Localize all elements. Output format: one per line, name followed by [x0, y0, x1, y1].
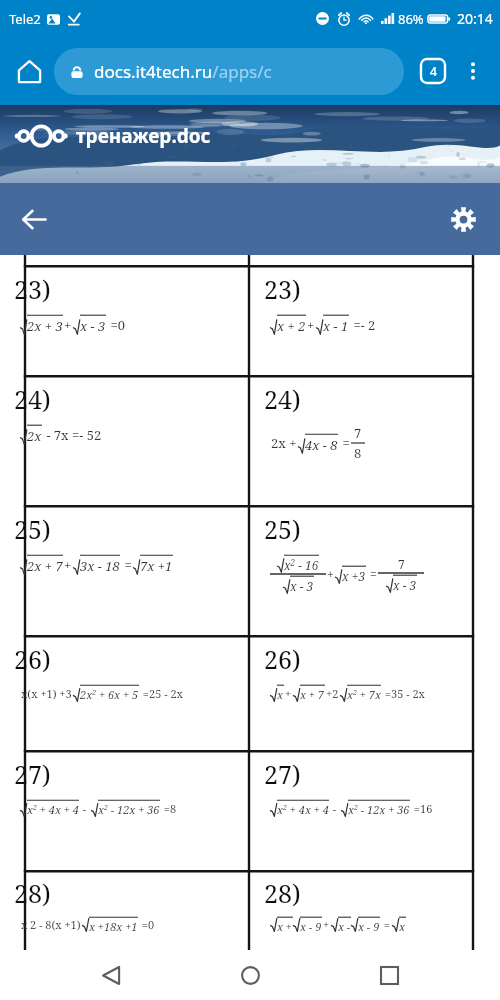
staticText: x -	[338, 919, 351, 932]
button[interactable]: Home	[222, 950, 278, 1000]
staticText: 3x - 18	[80, 557, 120, 575]
staticText: x	[21, 917, 28, 932]
staticText: 2x	[27, 427, 42, 445]
button[interactable]: More options	[454, 52, 492, 90]
staticText: x - 3	[290, 578, 314, 594]
staticText: +2	[326, 686, 339, 701]
staticText: x	[277, 687, 284, 702]
staticText: x - 3	[80, 317, 106, 335]
staticText: x2 - 12x + 36	[98, 802, 160, 817]
staticText: 27)	[14, 757, 51, 791]
staticText: 2 - 8(x +1)	[30, 917, 81, 932]
staticText: 28)	[264, 876, 301, 910]
staticText: +	[327, 566, 334, 582]
staticText: 26)	[14, 642, 51, 676]
staticText: 23)	[264, 272, 301, 306]
staticText: x	[399, 919, 406, 932]
staticText: x2 - 16	[284, 557, 319, 573]
staticText: x2 + 4x + 4	[277, 802, 329, 817]
staticText: x +	[277, 919, 293, 932]
staticText: 7	[398, 556, 405, 572]
staticText: Tele2	[9, 10, 41, 28]
staticText: x + 2	[277, 317, 306, 335]
staticText: 28)	[14, 876, 51, 910]
staticText: x2 + 7x	[347, 687, 381, 702]
staticText: =	[339, 434, 350, 452]
staticText: =25 - 2x	[140, 686, 183, 701]
staticText: =	[121, 556, 132, 574]
staticText: - 7x =- 52	[43, 426, 102, 444]
staticText: 2x + 7	[27, 557, 63, 575]
staticText: 86%	[398, 10, 424, 28]
staticText: 23)	[14, 272, 51, 306]
button[interactable]: docs.it4tech.ru/apps/c	[54, 48, 404, 95]
staticText: =0	[139, 917, 155, 932]
button[interactable]: Home	[8, 50, 50, 92]
staticText: 25)	[264, 512, 301, 546]
staticText: 4x - 8	[305, 436, 338, 454]
staticText: x - 9	[300, 919, 322, 932]
staticText: x - 9	[358, 919, 380, 932]
staticText: =16	[411, 801, 433, 816]
staticText: =	[381, 917, 391, 932]
staticText: 27)	[264, 757, 301, 791]
staticText: +	[285, 686, 292, 701]
staticText: 24)	[14, 382, 51, 416]
staticText: +	[64, 316, 72, 334]
button[interactable]: Back	[83, 950, 139, 1000]
staticText: 20:14	[457, 9, 493, 28]
staticText: 26)	[264, 642, 301, 676]
staticText: тренажер.doc	[76, 123, 211, 149]
staticText: =- 2	[350, 316, 376, 334]
staticText: =8	[161, 801, 177, 816]
staticText: 7x +1	[140, 557, 173, 575]
button[interactable]: Tabs	[412, 50, 454, 92]
button[interactable]: Settings	[439, 195, 487, 243]
staticText: 8	[354, 444, 362, 462]
staticText: -	[330, 801, 340, 816]
staticText: x2 + 4x + 4	[27, 802, 79, 817]
staticText: x + 7	[300, 687, 325, 702]
staticText: x(x +1) +3	[21, 686, 72, 701]
staticText: 7	[354, 424, 362, 442]
staticText: 2x2 + 6x + 5	[80, 687, 139, 702]
staticText: x +18x +1	[89, 919, 138, 932]
staticText: 2x +	[271, 434, 297, 452]
staticText: =0	[107, 316, 125, 334]
button[interactable]: Back	[10, 195, 58, 243]
staticText: +	[307, 316, 315, 334]
staticText: =35 - 2x	[382, 686, 425, 701]
staticText: x2 - 12x + 36	[348, 802, 410, 817]
staticText: x - 3	[393, 577, 417, 593]
button[interactable]: Recent apps	[361, 950, 417, 1000]
staticText: x +3	[342, 568, 366, 584]
staticText: =	[367, 566, 377, 582]
staticText: 24)	[264, 382, 301, 416]
staticText: -	[80, 801, 90, 816]
staticText: 4	[430, 63, 437, 79]
staticText: docs.it4tech.ru/apps/c	[94, 60, 272, 83]
staticText: 25)	[14, 512, 51, 546]
staticText: x - 1	[323, 317, 349, 335]
staticText: +	[323, 917, 330, 932]
staticText: 2x + 3	[27, 317, 63, 335]
staticText: +	[64, 556, 72, 574]
